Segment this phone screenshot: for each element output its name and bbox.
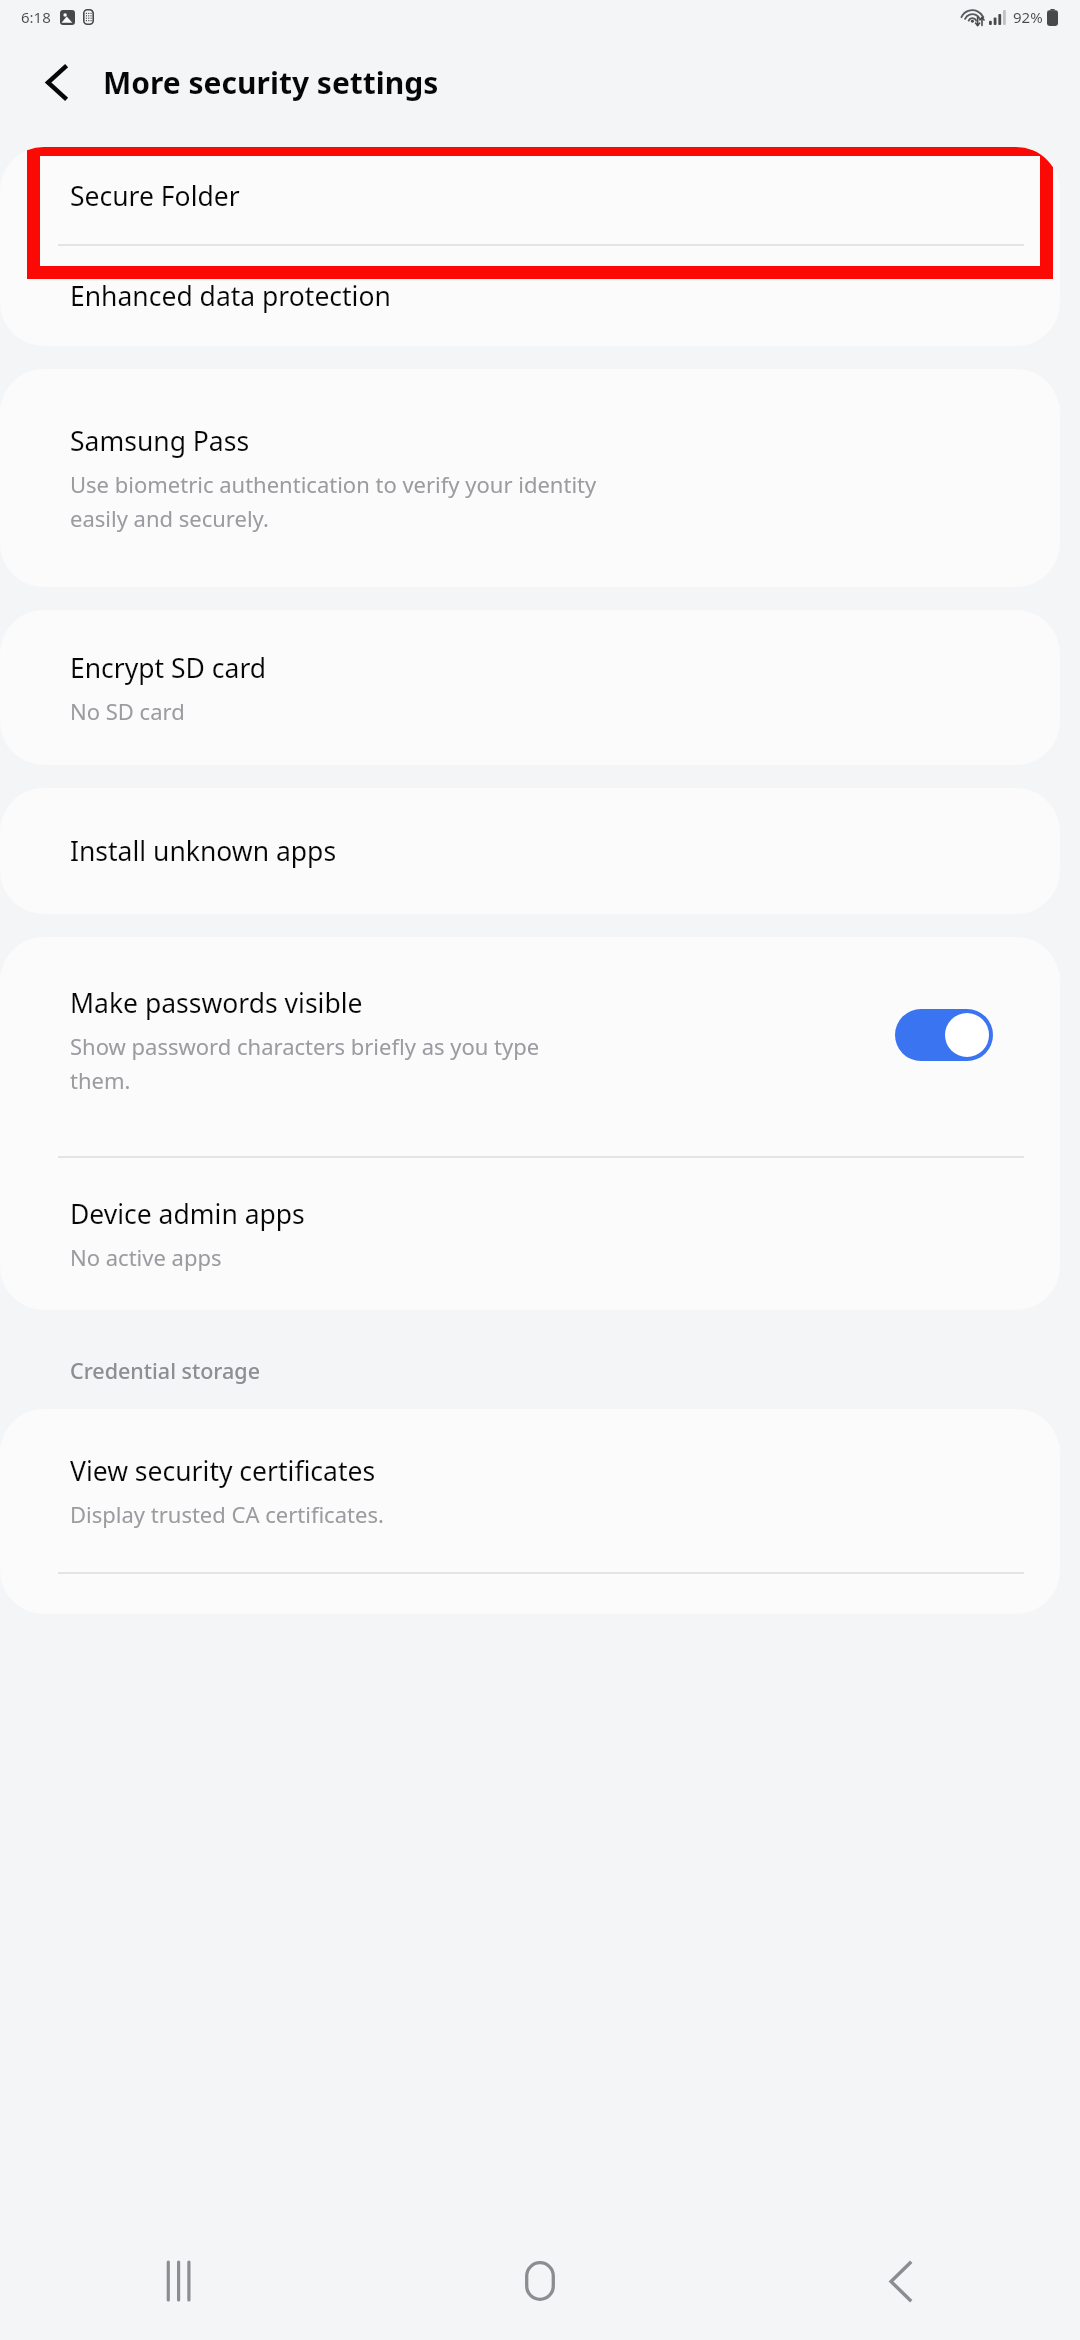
staticText: Make passwords visible [70,985,363,1021]
staticText: 92% [1013,7,1043,27]
button[interactable]: Enhanced data protection [0,246,1060,346]
button[interactable]: Navigate up [32,58,80,106]
staticText: Samsung Pass [70,423,250,459]
button[interactable]: Samsung Pass [0,369,1060,587]
staticText: No SD card [70,696,185,726]
staticText: Secure Folder [70,178,240,214]
button[interactable]: Encrypt SD card [0,610,1060,765]
staticText: Device admin apps [70,1196,305,1232]
staticText: Use biometric authentication to verify y… [70,469,597,534]
staticText: Credential storage [70,1356,260,1385]
button[interactable]: Home [360,2222,720,2340]
staticText: No active apps [70,1242,222,1272]
staticText: Show password characters briefly as you … [70,1031,540,1096]
staticText: Display trusted CA certificates. [70,1499,384,1529]
button[interactable]: View security certificates [0,1409,1060,1572]
staticText: Enhanced data protection [70,278,391,314]
button[interactable]: Make passwords visible, on [895,1009,993,1061]
staticText: More security settings [103,62,439,103]
button[interactable]: Back [720,2222,1080,2340]
button[interactable]: Secure Folder [0,147,1060,244]
staticText: Encrypt SD card [70,650,267,686]
staticText: Install unknown apps [70,833,337,869]
button[interactable]: Make passwords visible [0,937,1060,1156]
button[interactable]: Recent apps [0,2222,360,2340]
staticText: 6:18 [21,7,51,27]
staticText: View security certificates [70,1453,376,1489]
button[interactable]: Install unknown apps [0,788,1060,914]
button[interactable]: Device admin apps [0,1158,1060,1310]
